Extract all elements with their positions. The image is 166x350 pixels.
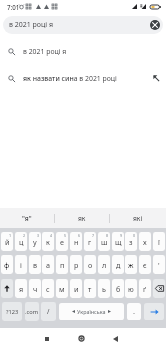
- staticText: як: [78, 214, 86, 223]
- button[interactable]: а: [42, 255, 54, 274]
- button[interactable]: ?123: [2, 302, 22, 321]
- button[interactable]: и: [70, 279, 82, 298]
- button[interactable]: .: [127, 303, 141, 320]
- button[interactable]: р: [70, 255, 82, 274]
- button[interactable]: Backspace: [153, 279, 165, 298]
- staticText: /: [47, 307, 50, 316]
- button[interactable]: г: [84, 232, 96, 251]
- staticText: е: [60, 237, 64, 247]
- staticText: 3: [37, 233, 40, 238]
- button[interactable]: ї: [153, 232, 165, 251]
- staticText: ': [158, 260, 160, 270]
- button[interactable]: Space: [59, 303, 124, 320]
- staticText: 9: [120, 233, 123, 238]
- button[interactable]: т: [84, 279, 96, 298]
- staticText: у: [33, 237, 37, 247]
- button[interactable]: ф: [1, 255, 13, 274]
- staticText: 7:01: [7, 3, 20, 11]
- button[interactable]: як назвати сина в 2021 році: [0, 64, 166, 92]
- staticText: з: [129, 237, 133, 247]
- staticText: 5: [64, 233, 67, 238]
- button[interactable]: ь: [98, 279, 110, 298]
- button[interactable]: ґ: [139, 279, 151, 298]
- staticText: як назвати сина в 2021 році: [23, 74, 117, 83]
- button[interactable]: ю: [125, 279, 137, 298]
- other: Shift: [4, 285, 10, 292]
- button[interactable]: Home: [67, 328, 95, 350]
- staticText: ї: [158, 237, 160, 247]
- other: Backspace: [155, 285, 164, 292]
- staticText: д: [116, 260, 121, 270]
- staticText: м: [59, 284, 65, 294]
- button[interactable]: ц: [15, 232, 27, 251]
- staticText: ч: [33, 284, 38, 294]
- button[interactable]: х: [139, 232, 151, 251]
- button[interactable]: щ: [112, 232, 124, 251]
- staticText: Українська: [77, 308, 106, 315]
- button[interactable]: ж: [125, 255, 137, 274]
- button[interactable]: ': [153, 255, 165, 274]
- button[interactable]: Search: [144, 303, 164, 320]
- staticText: .: [133, 306, 136, 316]
- staticText: 0: [133, 233, 136, 238]
- button[interactable]: б: [112, 279, 124, 298]
- button[interactable]: с: [42, 279, 54, 298]
- button[interactable]: /: [41, 302, 56, 321]
- staticText: р: [74, 260, 79, 270]
- button[interactable]: в 2021 році я: [3, 16, 163, 34]
- button[interactable]: ч: [29, 279, 41, 298]
- staticText: щ: [115, 237, 122, 247]
- button[interactable]: е: [56, 232, 68, 251]
- button[interactable]: .com: [25, 302, 39, 321]
- button[interactable]: в: [29, 255, 41, 274]
- button[interactable]: з: [125, 232, 137, 251]
- staticText: є: [143, 260, 147, 270]
- button[interactable]: й: [1, 232, 13, 251]
- staticText: ц: [19, 237, 24, 247]
- button[interactable]: Shift: [1, 279, 13, 298]
- button[interactable]: як: [54, 208, 109, 228]
- staticText: л: [102, 260, 107, 270]
- button[interactable]: які: [109, 208, 166, 228]
- button[interactable]: у: [29, 232, 41, 251]
- button[interactable]: к: [42, 232, 54, 251]
- staticText: ґ: [143, 284, 147, 294]
- staticText: г: [88, 237, 92, 247]
- staticText: х: [143, 237, 147, 247]
- staticText: "я": [22, 214, 32, 223]
- staticText: в: [33, 260, 38, 270]
- staticText: 7: [92, 233, 95, 238]
- staticText: и: [74, 284, 79, 294]
- staticText: в 2021 році я: [23, 47, 67, 56]
- button[interactable]: н: [70, 232, 82, 251]
- staticText: а: [46, 260, 50, 270]
- staticText: 1: [9, 233, 12, 238]
- staticText: ?123: [6, 308, 19, 316]
- button[interactable]: Clear query: [150, 20, 160, 30]
- button[interactable]: Back: [101, 328, 129, 350]
- button[interactable]: Recent apps: [33, 328, 61, 350]
- button[interactable]: "я": [0, 208, 54, 228]
- button[interactable]: я: [15, 279, 27, 298]
- staticText: п: [60, 260, 65, 270]
- button[interactable]: п: [56, 255, 68, 274]
- button[interactable]: д: [112, 255, 124, 274]
- button[interactable]: в 2021 році я: [0, 38, 166, 64]
- button[interactable]: і: [15, 255, 27, 274]
- button[interactable]: л: [98, 255, 110, 274]
- button[interactable]: м: [56, 279, 68, 298]
- staticText: о: [88, 260, 93, 270]
- staticText: т: [88, 284, 92, 294]
- staticText: б: [116, 284, 121, 294]
- staticText: .com: [25, 308, 39, 316]
- staticText: які: [133, 214, 143, 223]
- staticText: н: [74, 237, 79, 247]
- staticText: й: [5, 237, 10, 247]
- button[interactable]: є: [139, 255, 151, 274]
- button[interactable]: о: [84, 255, 96, 274]
- other: Insert suggestion: [153, 75, 160, 82]
- staticText: ь: [102, 284, 106, 294]
- staticText: ф: [4, 260, 10, 270]
- button[interactable]: ш: [98, 232, 110, 251]
- staticText: 2: [23, 233, 26, 238]
